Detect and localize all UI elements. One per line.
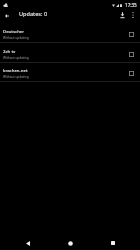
button[interactable]: krachen.net <box>0 63 140 81</box>
button[interactable]: Select <box>125 67 137 79</box>
staticText: 17:35 <box>125 2 137 8</box>
staticText: Without updating <box>3 56 29 60</box>
button[interactable]: Back <box>21 236 35 250</box>
button[interactable]: Select <box>125 48 137 60</box>
button[interactable]: 2ch tv <box>0 43 140 62</box>
staticText: Updates: 0 <box>19 10 48 17</box>
button[interactable]: Select <box>125 28 137 40</box>
staticText: krachen.net <box>3 67 28 73</box>
button[interactable]: More options <box>127 9 139 21</box>
button[interactable]: Deutscher <box>0 23 140 42</box>
staticText: Without updating <box>3 36 29 40</box>
staticText: 2ch tv <box>3 48 16 54</box>
button[interactable]: Recents <box>106 236 120 250</box>
staticText: Deutscher <box>3 28 25 34</box>
staticText: Without updating <box>3 75 29 79</box>
button[interactable]: Back <box>0 9 14 23</box>
button[interactable]: Home <box>63 236 77 250</box>
button[interactable]: Download <box>115 8 129 22</box>
